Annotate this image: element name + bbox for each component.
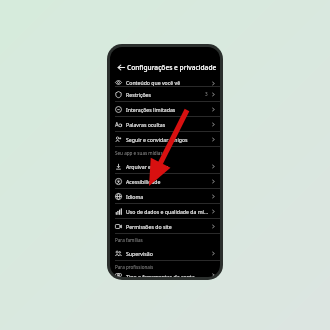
button[interactable]: Permissões do site [110,219,220,233]
staticText: Permissões do site [126,223,211,230]
staticText: Arquivar e baixar [126,163,211,170]
button[interactable]: Acessibilidade [110,174,220,188]
staticText: Interações limitadas [126,106,211,113]
button[interactable]: Supervisão [110,246,220,260]
staticText: Seu app e suas mídias [115,150,163,156]
button[interactable]: Uso de dados e qualidade da mídia [110,204,220,218]
staticText: Idioma [126,193,211,200]
button[interactable]: Arquivar e baixar [110,159,220,173]
button[interactable]: Tipo e ferramentas da conta [110,273,220,277]
staticText: Seguir e convidar amigos [126,136,211,143]
staticText: Configurações e privacidade [127,63,217,72]
button[interactable]: Voltar [115,61,127,73]
staticText: Palavras ocultas [126,121,211,128]
staticText: Restrições [126,91,205,98]
staticText: Tipo e ferramentas da conta [126,273,211,277]
button[interactable]: Idioma [110,189,220,203]
staticText: Conteúdo que você vê [126,79,211,86]
button[interactable]: Conteúdo que você vê [110,77,220,86]
button[interactable]: Interações limitadas [110,102,220,116]
button[interactable]: Seguir e convidar amigos [110,132,220,146]
button[interactable]: Restrições [110,87,220,101]
staticText: Acessibilidade [126,178,211,185]
staticText: Uso de dados e qualidade da mídia [126,208,211,215]
staticText: 3 [205,91,208,97]
staticText: Para profissionais [115,264,154,270]
staticText: Supervisão [126,250,211,257]
staticText: Para famílias [115,237,143,243]
button[interactable]: Palavras ocultas [110,117,220,131]
